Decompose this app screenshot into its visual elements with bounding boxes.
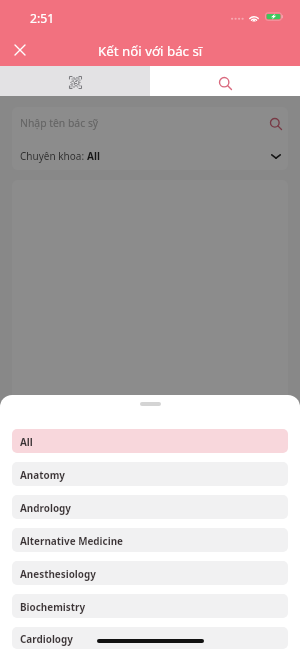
button[interactable]: Cardiology [12,627,288,649]
button[interactable]: Chuyên khoa: [12,139,288,170]
staticText: All [20,435,33,448]
staticText: Cardiology [20,632,73,645]
staticText: Alternative Medicine [20,534,123,547]
button[interactable]: All [12,429,288,453]
staticText: Kết nối với bác sĩ [98,42,203,60]
button[interactable]: Close [6,36,34,64]
button[interactable]: Anesthesiology [12,561,288,585]
staticText: 2:51 [30,10,55,27]
staticText: Chuyên khoa: [20,149,87,163]
staticText: All [87,149,100,163]
staticText: Nhập tên bác sỹ [20,116,99,130]
staticText: Anesthesiology [20,567,96,580]
button[interactable]: Scan QR code [0,66,150,96]
button[interactable]: Andrology [12,495,288,519]
button[interactable]: Search doctor [150,66,300,96]
button[interactable]: Biochemistry [12,594,288,618]
staticText: Andrology [20,501,71,514]
staticText: Biochemistry [20,600,86,613]
button[interactable]: Alternative Medicine [12,528,288,552]
button[interactable]: Anatomy [12,462,288,486]
staticText: Anatomy [20,468,65,481]
